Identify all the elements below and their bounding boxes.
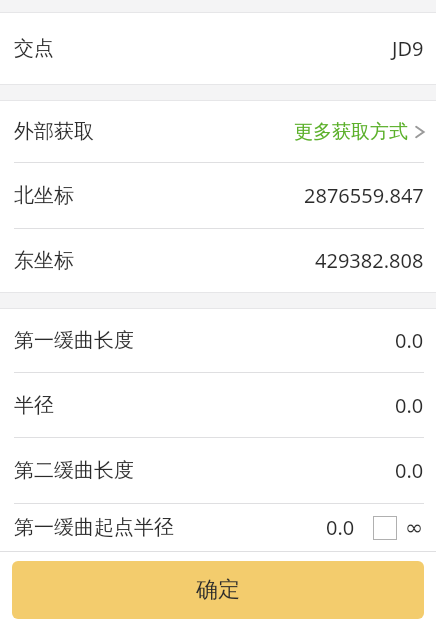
staticText: 更多获取方式 bbox=[294, 120, 408, 144]
staticText: 429382.808 bbox=[315, 247, 424, 274]
staticText: 东坐标 bbox=[14, 248, 74, 273]
staticText: 第一缓曲长度 bbox=[14, 328, 134, 353]
staticText: 半径 bbox=[14, 393, 54, 418]
staticText: 0.0 bbox=[326, 514, 355, 541]
staticText: 交点 bbox=[14, 36, 54, 61]
staticText: 0.0 bbox=[395, 457, 424, 484]
staticText: 确定 bbox=[196, 576, 240, 604]
button[interactable]: Infinite radius checkbox bbox=[373, 516, 397, 540]
staticText: JD9 bbox=[392, 35, 424, 62]
button[interactable]: 交点 bbox=[0, 13, 436, 84]
button[interactable]: 第二缓曲长度 bbox=[0, 438, 436, 503]
button[interactable]: 北坐标 bbox=[0, 163, 436, 228]
staticText: 第一缓曲起点半径 bbox=[14, 515, 174, 540]
button[interactable]: 第一缓曲长度 bbox=[0, 309, 436, 372]
button[interactable]: 确定 bbox=[12, 561, 424, 619]
staticText: 0.0 bbox=[395, 392, 424, 419]
staticText: 0.0 bbox=[395, 327, 424, 354]
button[interactable]: 半径 bbox=[0, 373, 436, 437]
staticText: 外部获取 bbox=[14, 119, 94, 144]
staticText: ∞ bbox=[405, 515, 424, 541]
button[interactable]: 东坐标 bbox=[0, 229, 436, 292]
button[interactable]: 外部获取 bbox=[0, 101, 436, 162]
staticText: 第二缓曲长度 bbox=[14, 458, 134, 483]
staticText: 北坐标 bbox=[14, 183, 74, 208]
staticText: 2876559.847 bbox=[304, 182, 424, 209]
